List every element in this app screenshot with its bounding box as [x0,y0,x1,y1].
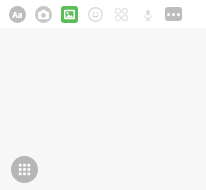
button[interactable]: Voice message [134,0,160,28]
button[interactable]: Apps [11,156,38,183]
staticText: Aa [12,9,23,20]
button[interactable]: Emoji [82,0,108,28]
button[interactable]: Camera [30,0,56,28]
button[interactable]: Text style [4,0,30,28]
button[interactable]: Stickers [108,0,134,28]
button[interactable]: More options [160,0,186,28]
button[interactable]: Gallery [56,0,82,28]
